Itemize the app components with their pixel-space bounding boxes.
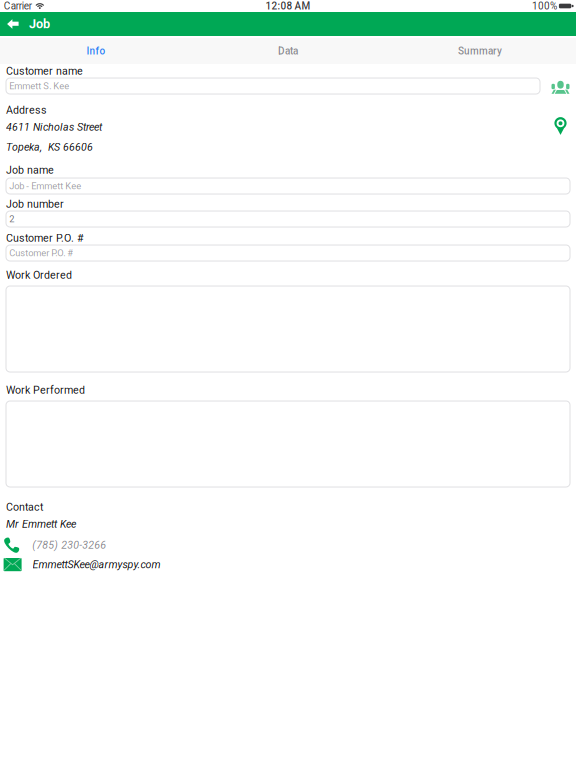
staticText: 4611 Nicholas Street xyxy=(6,121,102,133)
staticText: Data xyxy=(278,45,298,57)
staticText: Work Performed xyxy=(6,384,85,396)
staticText: Customer P.O. # xyxy=(9,247,73,258)
staticText: Mr Emmett Kee xyxy=(6,518,76,530)
button[interactable]: Select customer xyxy=(551,80,570,94)
button[interactable]: Show address on map xyxy=(554,117,567,135)
staticText: 2 xyxy=(9,213,14,224)
button[interactable]: Summary xyxy=(384,38,576,64)
staticText: Info xyxy=(86,45,105,57)
button[interactable]: (785) 230-3266 xyxy=(3,537,323,553)
button[interactable]: Data xyxy=(192,38,384,64)
staticText: Job xyxy=(29,17,50,31)
staticText: Work Ordered xyxy=(6,269,72,281)
staticText: Job name xyxy=(6,164,54,176)
staticText: Customer name xyxy=(6,65,83,77)
staticText: Customer P.O. # xyxy=(6,232,84,244)
staticText: Job - Emmett Kee xyxy=(9,180,81,191)
staticText: 12:08 AM xyxy=(265,0,310,12)
staticText: Carrier xyxy=(4,0,32,12)
staticText: Summary xyxy=(458,45,502,57)
staticText: (785) 230-3266 xyxy=(32,539,106,551)
staticText: Topeka, KS 66606 xyxy=(6,141,93,153)
staticText: Job number xyxy=(6,198,64,210)
staticText: Emmett S. Kee xyxy=(9,80,69,91)
staticText: Contact xyxy=(6,501,43,513)
button[interactable]: EmmettSKee@armyspy.com xyxy=(4,558,344,571)
staticText: EmmettSKee@armyspy.com xyxy=(33,558,161,571)
staticText: 100% xyxy=(532,0,557,12)
staticText: Address xyxy=(6,104,47,116)
button[interactable]: Back xyxy=(0,12,110,36)
button[interactable]: Info xyxy=(0,38,192,64)
